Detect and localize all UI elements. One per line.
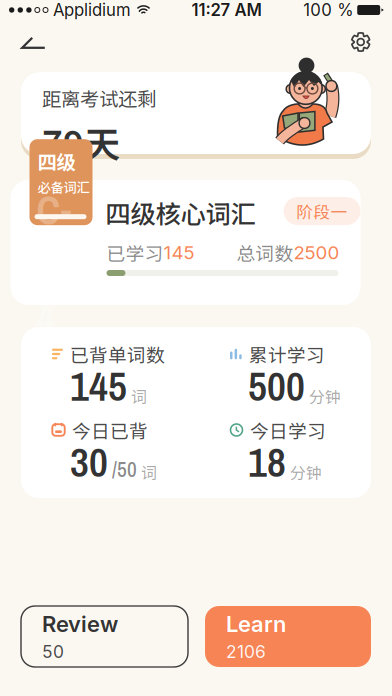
button[interactable]: Settings bbox=[338, 15, 392, 57]
staticText: 18 bbox=[248, 434, 286, 490]
staticText: 词 bbox=[141, 460, 157, 484]
staticText: 30 bbox=[70, 434, 108, 490]
staticText: Learn bbox=[226, 611, 286, 637]
staticText: 500 bbox=[248, 358, 305, 414]
staticText: 今日学习 bbox=[250, 416, 326, 443]
staticText: Applidium bbox=[53, 0, 131, 20]
staticText: 11:27 AM bbox=[192, 0, 262, 20]
staticText: 距离考试还剩 bbox=[42, 84, 156, 112]
staticText: 79天 bbox=[42, 116, 120, 168]
staticText: 词 bbox=[131, 384, 147, 408]
staticText: 分钟 bbox=[309, 384, 341, 408]
staticText: 已背单词数 bbox=[70, 340, 165, 367]
staticText: 今日已背 bbox=[72, 416, 148, 443]
staticText: 分钟 bbox=[290, 460, 322, 484]
staticText: 总词数 bbox=[236, 239, 293, 266]
staticText: 100 % bbox=[303, 0, 353, 20]
staticText: 2500 bbox=[293, 241, 339, 264]
staticText: /50 bbox=[112, 455, 137, 484]
staticText: 已学习 bbox=[106, 239, 163, 266]
staticText: 四级 bbox=[37, 147, 75, 175]
button[interactable]: Learn bbox=[205, 606, 371, 667]
staticText: 50 bbox=[42, 641, 64, 662]
staticText: 必备词汇 bbox=[37, 177, 89, 196]
staticText: 累计学习 bbox=[249, 340, 325, 367]
button[interactable]: Review bbox=[21, 606, 188, 667]
staticText: 2106 bbox=[226, 641, 266, 662]
staticText: 阶段一 bbox=[296, 199, 347, 223]
staticText: 四级核心词汇 bbox=[105, 194, 255, 231]
button[interactable]: Back bbox=[0, 14, 58, 57]
staticText: Review bbox=[42, 611, 118, 637]
staticText: 145 bbox=[70, 358, 127, 414]
staticText: CET4 bbox=[36, 183, 87, 345]
staticText: 145 bbox=[163, 241, 194, 264]
